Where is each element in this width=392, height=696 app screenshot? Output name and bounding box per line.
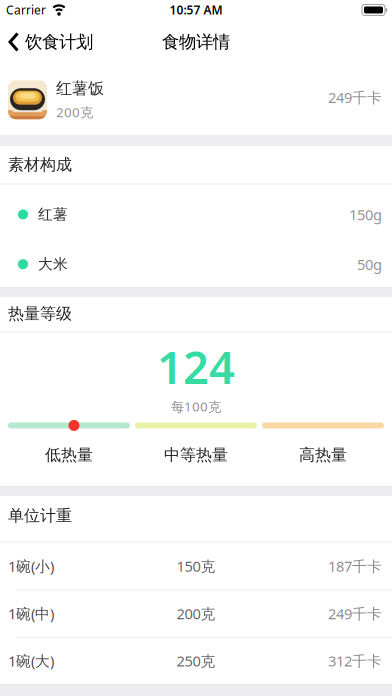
staticText: 1碗(大) <box>8 651 54 671</box>
staticText: 249千卡 <box>328 604 382 623</box>
staticText: 124 <box>157 336 235 396</box>
staticText: 249千卡 <box>328 87 382 107</box>
staticText: 饮食计划 <box>25 31 93 53</box>
staticText: 200克 <box>56 103 93 121</box>
button[interactable]: 大米 <box>0 248 392 274</box>
staticText: 热量等级 <box>8 304 72 324</box>
button[interactable]: 红薯饭 <box>0 78 392 121</box>
button[interactable]: 红薯 <box>0 196 392 224</box>
staticText: 1碗(小) <box>8 556 54 576</box>
staticText: 食物详情 <box>162 31 230 53</box>
staticText: 1碗(中) <box>8 604 54 623</box>
button[interactable]: 饮食计划 <box>8 31 93 53</box>
staticText: 高热量 <box>299 445 347 465</box>
staticText: 187千卡 <box>328 556 382 576</box>
staticText: 每100克 <box>171 398 221 415</box>
button[interactable]: 1碗(中) <box>0 604 392 623</box>
staticText: 红薯饭 <box>56 78 104 98</box>
staticText: 大米 <box>38 255 68 273</box>
staticText: 312千卡 <box>328 651 382 671</box>
staticText: 红薯 <box>38 205 68 223</box>
staticText: 素材构成 <box>8 155 72 175</box>
button[interactable]: 1碗(小) <box>0 556 392 576</box>
staticText: 150克 <box>176 556 215 576</box>
staticText: 50g <box>357 254 382 274</box>
staticText: 中等热量 <box>164 445 228 465</box>
staticText: 单位计重 <box>8 506 72 526</box>
staticText: Carrier <box>6 2 46 18</box>
staticText: 低热量 <box>45 445 93 465</box>
staticText: 150g <box>349 205 382 224</box>
staticText: 250克 <box>176 651 215 671</box>
staticText: 10:57 AM <box>169 2 222 18</box>
staticText: 200克 <box>176 604 215 623</box>
button[interactable]: 1碗(大) <box>0 651 392 671</box>
